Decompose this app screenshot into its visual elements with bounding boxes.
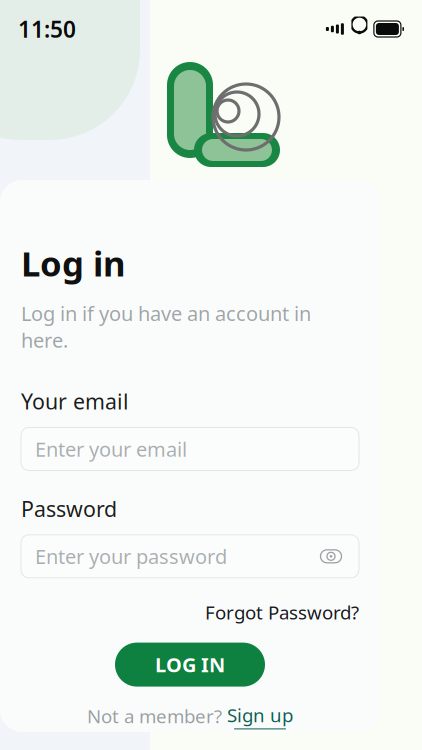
button[interactable]: Forgot Password? (205, 600, 359, 625)
staticText: Log in if you have an account in here. (21, 300, 311, 353)
staticText: Password (21, 494, 117, 523)
staticText: Forgot Password? (205, 600, 359, 625)
staticText: Your email (21, 387, 129, 415)
staticText: Log in (21, 240, 126, 286)
button[interactable]: LOG IN (115, 643, 265, 687)
staticText: 11:50 (18, 14, 76, 44)
button[interactable]: Show password (317, 544, 345, 568)
button[interactable]: Sign up (227, 703, 293, 729)
staticText: LOG IN (155, 651, 225, 678)
staticText: Enter your email (35, 436, 187, 462)
staticText: Enter your password (35, 543, 227, 570)
staticText: Not a member? (87, 704, 227, 728)
staticText: Sign up (227, 703, 293, 727)
